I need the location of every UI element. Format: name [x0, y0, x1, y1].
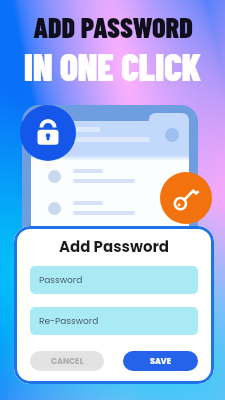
staticText: CANCEL [51, 356, 84, 367]
staticText: Password [39, 274, 83, 287]
button[interactable]: Lock [20, 105, 76, 161]
staticText: Add Password [59, 236, 170, 257]
button[interactable]: Re-Password [30, 307, 198, 335]
staticText: SAVE [150, 356, 171, 367]
button[interactable]: Password [30, 266, 198, 294]
staticText: ADD PASSWORD [33, 10, 193, 44]
staticText: Re-Password [39, 315, 99, 328]
staticText: IN ONE CLICK [24, 44, 201, 88]
button[interactable]: SAVE [123, 351, 198, 371]
button[interactable]: Key [160, 172, 212, 224]
button[interactable]: CANCEL [30, 351, 104, 371]
